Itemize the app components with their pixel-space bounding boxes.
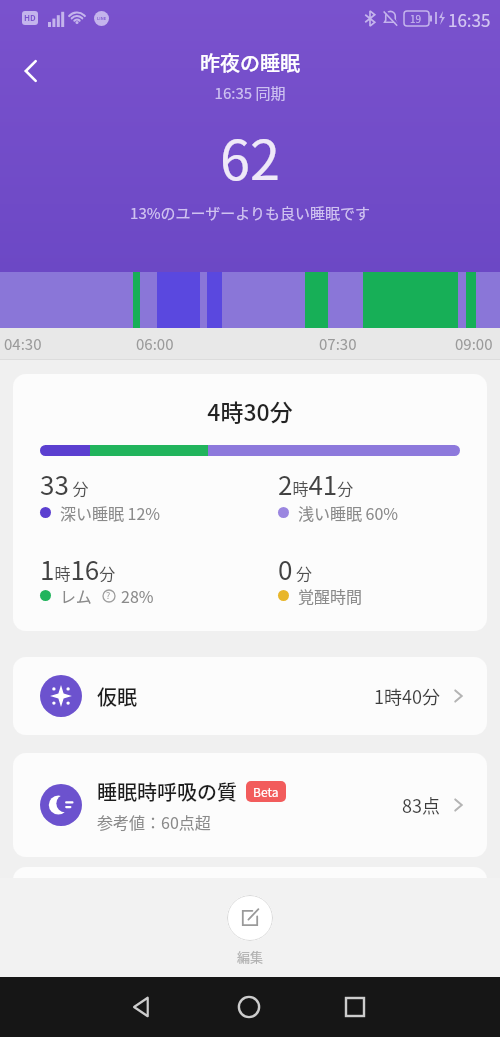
staticText: 2時41分 <box>278 465 354 503</box>
button[interactable]: 睡眠時呼吸の質 <box>13 753 487 857</box>
staticText: 28% <box>121 584 154 607</box>
staticText: 04:30 <box>4 333 42 355</box>
staticText: 4時30分 <box>13 394 487 427</box>
staticText: 16:35 <box>448 7 491 32</box>
staticText: 09:00 <box>455 333 493 355</box>
staticText: 1時40分 <box>374 683 440 709</box>
staticText: 1時16分 <box>40 550 116 588</box>
staticText: ? <box>106 589 111 602</box>
staticText: 覚醒時間 <box>298 584 363 607</box>
staticText: 浅い睡眠 60% <box>298 501 399 524</box>
staticText: 仮眠 <box>97 682 137 711</box>
button[interactable]: 4時30分 <box>13 374 487 631</box>
staticText: 深い睡眠 12% <box>60 501 161 524</box>
staticText: 06:00 <box>136 333 174 355</box>
staticText: 0 分 <box>278 550 313 588</box>
staticText: 睡眠時呼吸の質 <box>97 777 237 806</box>
staticText: レム <box>60 584 96 607</box>
staticText: 33 分 <box>40 465 89 503</box>
staticText: HD <box>24 12 36 24</box>
staticText: 83点 <box>402 792 440 818</box>
button[interactable] <box>131 996 153 1018</box>
button[interactable]: 仮眠 <box>13 657 487 735</box>
staticText: 参考値：60点超 <box>97 810 211 833</box>
button[interactable] <box>345 997 365 1017</box>
staticText: 昨夜の睡眠 <box>0 48 500 77</box>
staticText: 16:35 同期 <box>0 82 500 104</box>
button[interactable] <box>18 58 44 84</box>
staticText: 13%のユーザーよりも良い睡眠です <box>0 202 500 224</box>
staticText: 07:30 <box>319 333 357 355</box>
staticText: 編集 <box>237 947 264 966</box>
staticText: 19 <box>410 11 422 25</box>
staticText: Beta <box>253 783 279 800</box>
staticText: LINE <box>97 15 107 21</box>
button[interactable] <box>227 895 273 941</box>
staticText: 62 <box>0 117 500 195</box>
button[interactable] <box>238 996 260 1018</box>
